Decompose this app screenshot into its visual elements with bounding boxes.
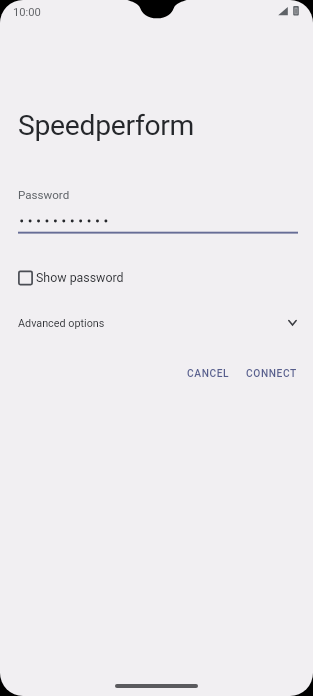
staticText: Speedperform bbox=[18, 109, 195, 142]
button[interactable]: Advanced options bbox=[0, 312, 313, 334]
button[interactable]: CANCEL bbox=[179, 362, 238, 386]
staticText: Password bbox=[18, 188, 70, 202]
staticText: Advanced options bbox=[18, 317, 105, 330]
staticText: Show password bbox=[36, 270, 124, 285]
button[interactable]: CONNECT bbox=[238, 362, 305, 386]
staticText: CONNECT bbox=[246, 368, 297, 380]
button[interactable]: Show password bbox=[18, 270, 124, 285]
staticText: 10:00 bbox=[13, 6, 41, 19]
staticText: CANCEL bbox=[187, 368, 230, 380]
